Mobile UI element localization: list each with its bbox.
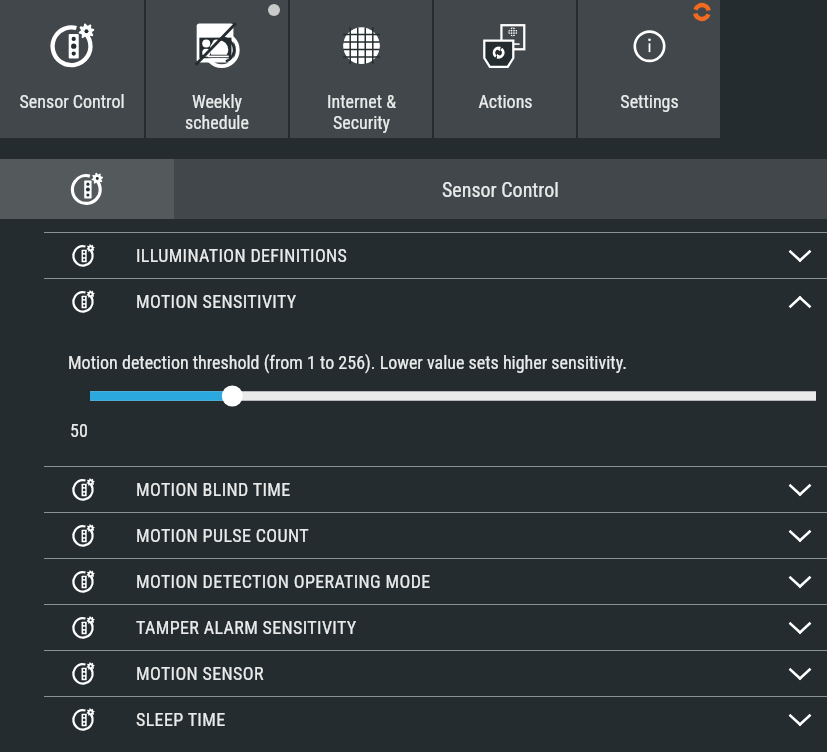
staticText: MOTION SENSOR bbox=[136, 663, 264, 684]
button[interactable]: MOTION SENSITIVITY bbox=[0, 279, 827, 324]
staticText: Actions bbox=[478, 91, 533, 112]
staticText: MOTION BLIND TIME bbox=[136, 479, 291, 500]
staticText: ILLUMINATION DEFINITIONS bbox=[136, 245, 348, 266]
button[interactable]: Actions bbox=[434, 0, 576, 138]
staticText: Settings bbox=[620, 91, 679, 112]
staticText: Sensor Control bbox=[442, 178, 559, 201]
button[interactable]: MOTION PULSE COUNT bbox=[0, 513, 827, 558]
button[interactable]: Sensor Control bbox=[0, 159, 174, 219]
staticText: MOTION SENSITIVITY bbox=[136, 291, 297, 312]
staticText: Sensor Control bbox=[19, 91, 125, 112]
button[interactable]: MOTION SENSOR bbox=[0, 651, 827, 696]
staticText: 50 bbox=[70, 420, 88, 441]
button[interactable]: ILLUMINATION DEFINITIONS bbox=[0, 233, 827, 278]
button[interactable]: Sensor Control bbox=[174, 159, 827, 219]
button[interactable]: Weekly schedule bbox=[146, 0, 288, 138]
button[interactable]: Settings bbox=[578, 0, 720, 138]
button[interactable]: Internet & Security bbox=[290, 0, 432, 138]
staticText: MOTION DETECTION OPERATING MODE bbox=[136, 571, 431, 592]
staticText: TAMPER ALARM SENSITIVITY bbox=[136, 617, 357, 638]
button[interactable]: MOTION DETECTION OPERATING MODE bbox=[0, 559, 827, 604]
button[interactable]: SLEEP TIME bbox=[0, 697, 827, 742]
staticText: Internet & Security bbox=[327, 91, 396, 134]
button[interactable]: Sensor Control bbox=[0, 0, 144, 138]
staticText: Motion detection threshold (from 1 to 25… bbox=[68, 352, 627, 373]
staticText: Weekly schedule bbox=[185, 91, 249, 134]
staticText: MOTION PULSE COUNT bbox=[136, 525, 309, 546]
staticText: SLEEP TIME bbox=[136, 709, 226, 730]
button[interactable]: TAMPER ALARM SENSITIVITY bbox=[0, 605, 827, 650]
button[interactable]: MOTION BLIND TIME bbox=[0, 467, 827, 512]
